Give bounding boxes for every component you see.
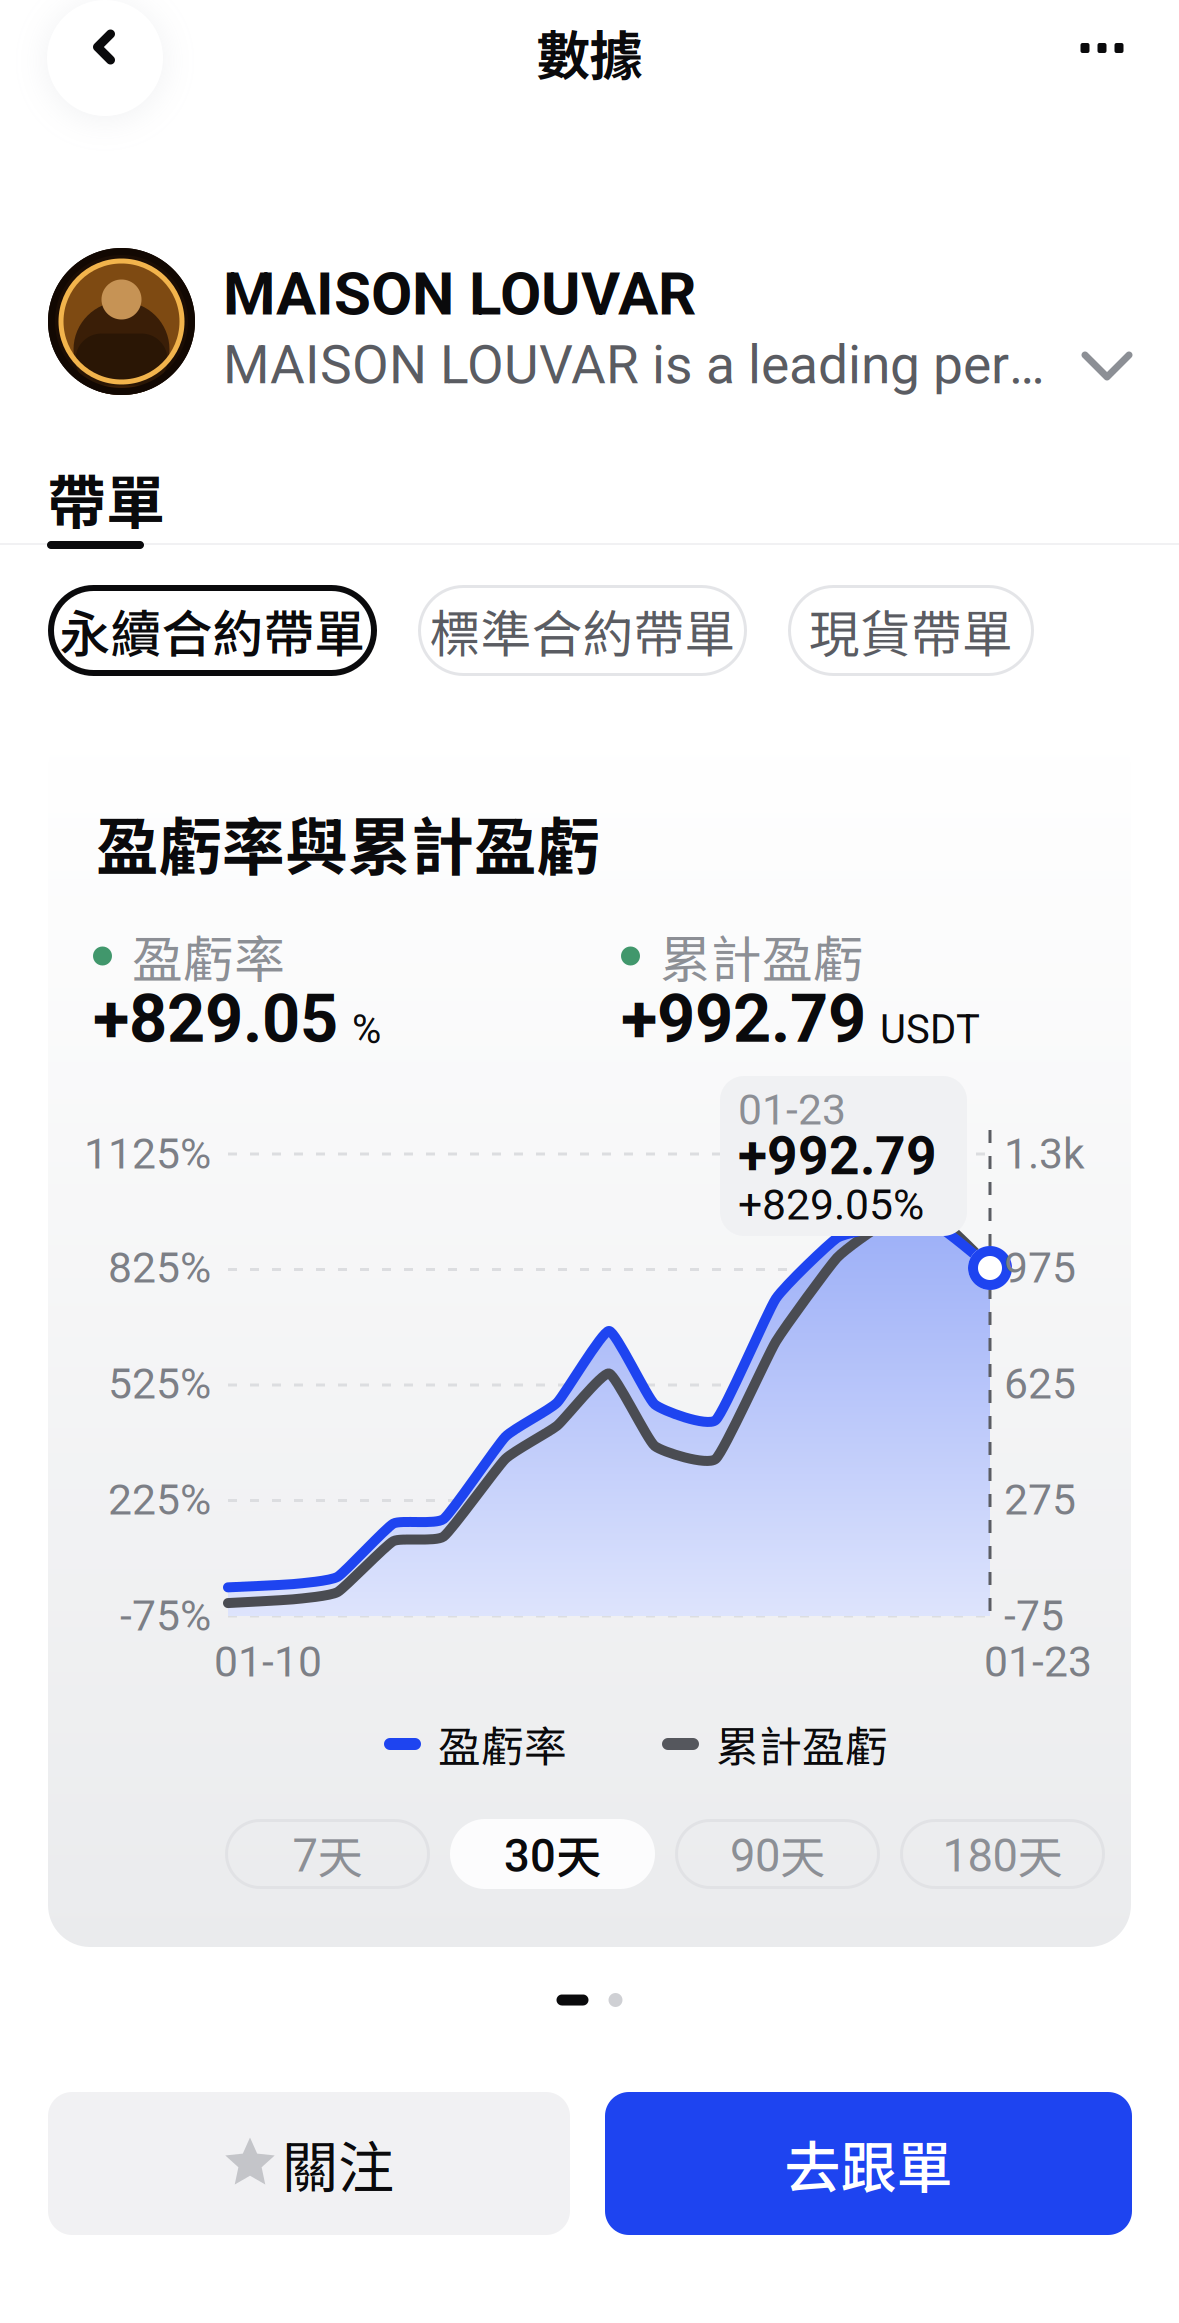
staticText: +829.05 [93,980,338,1058]
staticText: +992.79 [738,1125,937,1187]
staticText: 數據 [536,13,642,91]
staticText: 525% [108,1359,211,1409]
staticText: MAISON LOUVAR [223,259,696,329]
staticText: 01-23 [738,1085,846,1135]
staticText: 關注 [282,2123,394,2204]
staticText: 275 [1004,1475,1076,1525]
staticText: 永續合約帶單 [59,594,365,667]
button[interactable]: Back [47,0,163,116]
button[interactable]: MAISON LOUVAR [48,248,1133,395]
staticText: 30天 [504,1821,601,1887]
staticText: 225% [108,1475,211,1525]
button[interactable]: 永續合約帶單 [48,585,377,676]
button[interactable]: 帶單 [47,468,167,550]
staticText: 180天 [942,1821,1062,1887]
staticText: +829.05% [738,1180,924,1230]
button[interactable]: 90天 [675,1819,880,1889]
staticText: 去跟單 [784,2123,952,2204]
staticText: USDT [880,1006,980,1053]
staticText: -75% [120,1591,211,1641]
staticText: 累計盈虧 [716,1713,888,1775]
staticText: 盈虧率 [132,919,285,993]
staticText: 1.3k [1004,1129,1085,1179]
staticText: 975 [1004,1243,1076,1293]
button[interactable]: 7天 [225,1819,430,1889]
staticText: +992.79 [621,980,866,1058]
staticText: 7天 [292,1821,362,1887]
staticText: 90天 [730,1821,825,1887]
staticText: 累計盈虧 [660,919,864,993]
staticText: 帶單 [47,456,165,541]
staticText: 01-10 [214,1637,322,1687]
staticText: 現貨帶單 [809,594,1013,667]
staticText: 標準合約帶單 [429,594,735,667]
button[interactable]: 180天 [900,1819,1105,1889]
staticText: 01-23 [984,1637,1092,1687]
button[interactable]: 現貨帶單 [788,585,1034,676]
staticText: 盈虧率 [438,1713,567,1775]
button[interactable]: 關注 [48,2092,570,2235]
button[interactable]: 標準合約帶單 [418,585,747,676]
button[interactable]: More options [1040,0,1164,96]
staticText: MAISON LOUVAR is a leading perpetual f..… [223,334,1061,396]
staticText: 盈虧率與累計盈虧 [96,797,600,888]
staticText: 625 [1004,1359,1076,1409]
button[interactable]: 30天 [450,1819,655,1889]
staticText: % [352,1006,381,1053]
button[interactable]: 去跟單 [605,2092,1132,2235]
staticText: -75 [1004,1591,1064,1641]
staticText: 825% [108,1243,211,1293]
staticText: 1125% [84,1129,211,1179]
